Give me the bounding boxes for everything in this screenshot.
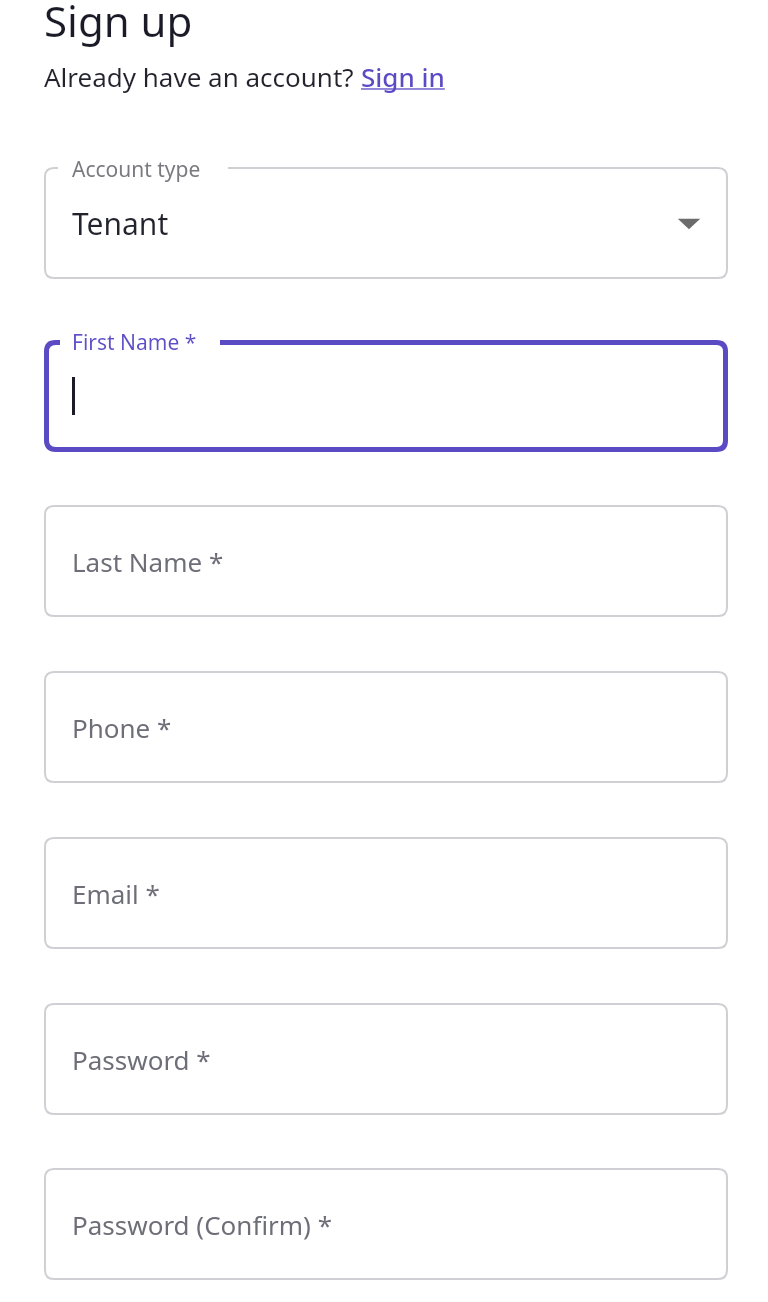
staticText: Already have an account?	[44, 59, 361, 94]
button[interactable]: Account type, Tenant	[44, 167, 728, 279]
button[interactable]: First Name, required	[44, 340, 728, 452]
button[interactable]: Email *	[44, 837, 728, 949]
staticText: Last Name *	[72, 544, 224, 579]
staticText: Sign up	[44, 0, 193, 49]
button[interactable]: Password (Confirm) *	[44, 1168, 728, 1280]
staticText: Account type	[72, 155, 201, 184]
button[interactable]: Password *	[44, 1003, 728, 1115]
staticText: First Name *	[72, 328, 197, 357]
button[interactable]: Last Name *	[44, 505, 728, 617]
staticText: Password *	[72, 1042, 211, 1077]
button[interactable]: Sign in	[361, 59, 445, 94]
button[interactable]: Phone *	[44, 671, 728, 783]
staticText: Phone *	[72, 710, 172, 745]
staticText: Password (Confirm) *	[72, 1207, 332, 1242]
staticText: Email *	[72, 876, 160, 911]
staticText: Sign in	[361, 59, 445, 94]
staticText: Tenant	[72, 203, 169, 244]
